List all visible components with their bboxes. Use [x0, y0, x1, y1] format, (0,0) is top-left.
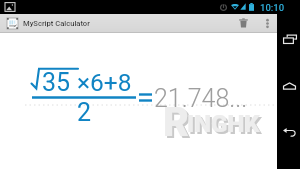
staticText: R [165, 101, 192, 148]
button[interactable]: Back [279, 120, 300, 143]
staticText: 35 [42, 68, 71, 97]
staticText: 21.748... [154, 84, 248, 113]
staticText: INGHK [187, 110, 260, 138]
button[interactable]: More options [257, 14, 277, 32]
button[interactable]: Home [279, 74, 300, 97]
staticText: ×6+8 [77, 68, 132, 97]
staticText: 2 [77, 98, 92, 127]
staticText: MyScript Calculator [23, 19, 90, 28]
button[interactable]: Recents [279, 28, 300, 51]
staticText: INGHK [189, 112, 262, 140]
staticText: R [163, 99, 190, 146]
staticText: 10:10 [260, 2, 285, 13]
button[interactable]: Delete [229, 14, 257, 32]
